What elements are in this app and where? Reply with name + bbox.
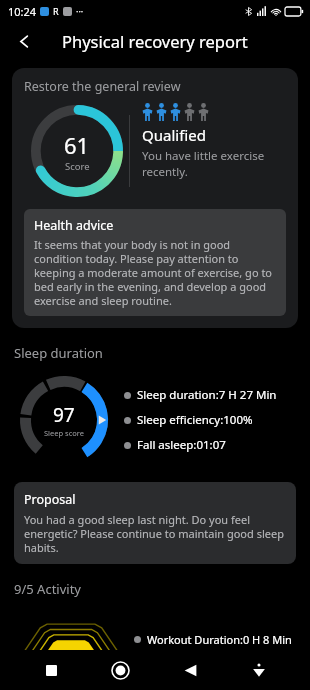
staticText: It seems that your body is not in good c… (34, 237, 276, 308)
button[interactable]: Restore the general review (12, 68, 298, 328)
staticText: Sleep efficiency:100% (137, 412, 253, 428)
staticText: Restore the general review (24, 78, 181, 95)
staticText: Health advice (34, 217, 114, 234)
staticText: Sleep score (44, 428, 84, 438)
button[interactable]: Download (241, 652, 277, 688)
staticText: 9/5 Activity (14, 580, 81, 598)
staticText: 61 (64, 130, 90, 160)
button[interactable]: Home (102, 652, 138, 688)
staticText: 10:24 (8, 4, 37, 19)
button[interactable]: Proposal (14, 482, 296, 564)
staticText: ··· (76, 5, 84, 17)
button[interactable]: Back (172, 652, 208, 688)
staticText: Workout Duration:0 H 8 Min (147, 632, 292, 647)
staticText: Sleep duration:7 H 27 Min (137, 387, 277, 403)
button[interactable]: Health advice (24, 209, 286, 316)
staticText: You have little exercise recently. (142, 148, 286, 180)
staticText: Qualified (142, 125, 206, 145)
staticText: Fall asleep:01:07 (137, 437, 226, 453)
button[interactable]: Recents (33, 652, 69, 688)
staticText: You had a good sleep last night. Do you … (24, 512, 286, 555)
staticText: Physical recovery report (62, 30, 248, 52)
staticText: Proposal (24, 491, 76, 508)
staticText: 97 (53, 402, 75, 428)
staticText: R (53, 5, 59, 17)
staticText: Score (65, 160, 90, 173)
staticText: Sleep duration (14, 344, 103, 362)
button[interactable]: Back (10, 27, 38, 55)
